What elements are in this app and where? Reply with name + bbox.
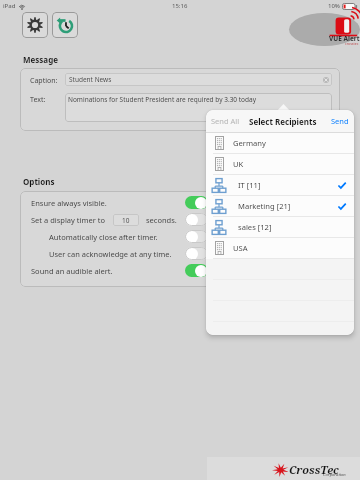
staticText: Nominations for Student President are re… (68, 95, 256, 104)
staticText: CrossTec (289, 462, 339, 477)
button[interactable]: Settings (22, 12, 48, 38)
staticText: Student News (69, 75, 112, 84)
staticText: USA (233, 243, 248, 253)
staticText: crosstec (345, 41, 359, 46)
button[interactable]: Sound an audible alert. (20, 262, 217, 279)
staticText: IT [11] (238, 180, 261, 190)
staticText: Options (23, 176, 55, 187)
button[interactable]: USA (206, 238, 354, 258)
button[interactable]: Germany (206, 133, 354, 153)
button[interactable]: Set a display timer to (20, 211, 217, 228)
button[interactable]: Student News (65, 73, 332, 86)
staticText: sales [12] (238, 222, 272, 232)
staticText: Select Recipients (249, 116, 317, 127)
button[interactable]: Marketing [21] (206, 196, 354, 216)
button[interactable]: Recent history (52, 12, 78, 38)
staticText: iPad (3, 2, 16, 10)
button[interactable]: Send (331, 116, 349, 126)
staticText: 10% (328, 2, 340, 10)
staticText: Automatically close after timer. (49, 232, 158, 242)
staticText: Text: (30, 95, 46, 105)
button[interactable]: Ensure always visible. (20, 194, 217, 211)
staticText: Marketing [21] (238, 201, 291, 211)
staticText: Caption: (30, 76, 58, 86)
staticText: Germany (233, 138, 266, 148)
staticText: Ensure always visible. (31, 198, 107, 208)
staticText: UK (233, 159, 244, 169)
staticText: VUE Alert (329, 34, 360, 43)
staticText: Corporation (323, 472, 346, 477)
button[interactable]: UK (206, 154, 354, 174)
button[interactable]: User can acknowledge at any time. (20, 245, 217, 262)
staticText: 15:16 (172, 2, 188, 10)
staticText: Sound an audible alert. (31, 266, 113, 276)
button[interactable]: IT [11] (206, 175, 354, 195)
button[interactable]: Nominations for Student President are re… (65, 93, 332, 122)
button[interactable]: Send All (211, 116, 240, 126)
button[interactable]: Automatically close after timer. (20, 228, 217, 245)
button[interactable]: sales [12] (206, 217, 354, 237)
staticText: seconds. (146, 215, 177, 225)
staticText: Set a display timer to (31, 215, 106, 225)
staticText: User can acknowledge at any time. (49, 249, 172, 259)
staticText: Message (23, 54, 58, 65)
staticText: 10 (122, 216, 130, 225)
